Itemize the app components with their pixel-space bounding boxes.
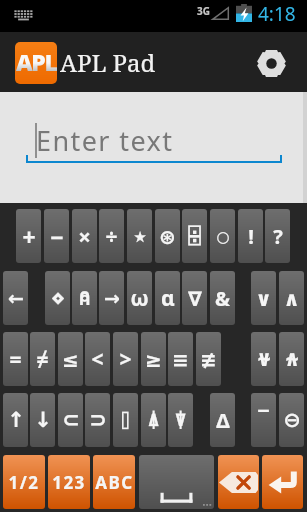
staticText: ↓ xyxy=(34,408,52,432)
staticText: ⌹ xyxy=(188,224,201,248)
staticText: 1/2 xyxy=(8,471,40,494)
button[interactable]: Space xyxy=(139,455,214,509)
button[interactable]: ≤ xyxy=(58,332,83,386)
button[interactable]: ⌷ xyxy=(113,393,138,447)
staticText: ⊂ xyxy=(62,408,80,432)
button[interactable]: ÷ xyxy=(99,209,124,263)
staticText: ← xyxy=(8,287,24,309)
staticText: ⊛ xyxy=(159,225,176,248)
button[interactable]: ⊂ xyxy=(58,393,83,447)
staticText: → xyxy=(104,287,120,309)
staticText: > xyxy=(119,345,132,374)
staticText: ÷ xyxy=(105,222,118,251)
staticText: 123 xyxy=(52,471,86,494)
button[interactable]: ? xyxy=(265,209,290,263)
button[interactable]: ⍒ xyxy=(168,393,193,447)
staticText: < xyxy=(91,345,104,374)
staticText: & xyxy=(215,285,230,312)
button[interactable]: APL xyxy=(15,42,57,84)
staticText: 4:18 xyxy=(258,1,296,27)
button[interactable]: − xyxy=(44,209,69,263)
button[interactable]: ⊖ xyxy=(279,393,304,447)
staticText: ⊃ xyxy=(89,408,107,432)
staticText: + xyxy=(22,221,36,252)
button[interactable]: ⌹ xyxy=(182,209,207,263)
button[interactable]: ¯ xyxy=(251,393,276,447)
staticText: ⍝ xyxy=(78,286,91,310)
button[interactable]: ↑ xyxy=(3,393,28,447)
button[interactable]: & xyxy=(210,271,235,325)
button[interactable]: Backspace xyxy=(218,455,259,509)
staticText: ⋆ xyxy=(132,222,148,251)
button[interactable]: ⍝ xyxy=(72,271,97,325)
button[interactable]: 123 xyxy=(48,455,90,509)
button[interactable]: Enter text xyxy=(26,108,282,162)
staticText: ⍒ xyxy=(175,410,186,430)
button[interactable]: 1/2 xyxy=(3,455,45,509)
button[interactable]: → xyxy=(99,271,124,325)
staticText: ⋄ xyxy=(50,284,66,312)
button[interactable]: ≡ xyxy=(168,332,193,386)
button[interactable]: + xyxy=(16,209,41,263)
staticText: ≡ xyxy=(172,348,189,371)
staticText: ABC xyxy=(95,471,134,494)
button[interactable]: × xyxy=(72,209,97,263)
button[interactable]: ω xyxy=(127,271,152,325)
button[interactable]: Δ xyxy=(210,393,235,447)
button[interactable]: Settings xyxy=(252,44,290,82)
button[interactable]: ∇ xyxy=(182,271,207,325)
button[interactable]: ⊃ xyxy=(85,393,110,447)
button[interactable]: Enter xyxy=(262,455,303,509)
button[interactable]: ⍋ xyxy=(141,393,166,447)
button[interactable]: α xyxy=(155,271,180,325)
button[interactable]: ○ xyxy=(210,209,235,263)
button[interactable]: ← xyxy=(3,271,28,325)
staticText: Enter text xyxy=(36,122,174,159)
staticText: = xyxy=(9,345,22,374)
staticText: ≤ xyxy=(62,348,79,371)
staticText: ≥ xyxy=(145,348,162,371)
staticText: 3G xyxy=(197,4,210,18)
button[interactable]: ⋆ xyxy=(127,209,152,263)
staticText: APL xyxy=(16,46,57,77)
staticText: ≠ xyxy=(36,345,49,374)
button[interactable]: ≠ xyxy=(30,332,55,386)
button[interactable]: ⋄ xyxy=(45,271,70,325)
button[interactable]: > xyxy=(113,332,138,386)
staticText: ⌷ xyxy=(120,410,131,431)
staticText: ⍲ xyxy=(285,346,299,372)
button[interactable]: ∧ xyxy=(279,271,304,325)
staticText: α xyxy=(161,284,175,313)
button[interactable]: < xyxy=(85,332,110,386)
staticText: ↑ xyxy=(7,408,25,432)
staticText: Δ xyxy=(216,407,230,434)
staticText: ∧ xyxy=(283,287,300,310)
button[interactable]: ≥ xyxy=(141,332,166,386)
staticText: ¯ xyxy=(258,406,269,435)
staticText: × xyxy=(78,221,91,251)
staticText: APL Pad xyxy=(60,46,156,79)
button[interactable]: ! xyxy=(238,209,263,263)
staticText: ⍋ xyxy=(148,410,159,430)
button[interactable]: ABC xyxy=(93,455,135,509)
button[interactable]: ⍱ xyxy=(251,332,276,386)
staticText: ⊖ xyxy=(283,408,301,432)
staticText: ⍱ xyxy=(257,346,271,372)
button[interactable]: ⊛ xyxy=(155,209,180,263)
staticText: ∇ xyxy=(188,287,202,310)
staticText: − xyxy=(50,221,64,252)
staticText: ○ xyxy=(216,228,230,245)
staticText: ω xyxy=(130,284,149,313)
staticText: ! xyxy=(248,223,254,250)
staticText: ∨ xyxy=(255,287,272,310)
staticText: ≢ xyxy=(200,348,217,371)
button[interactable]: ⍲ xyxy=(279,332,304,386)
button[interactable]: ≢ xyxy=(196,332,221,386)
staticText: ? xyxy=(273,223,283,250)
button[interactable]: ∨ xyxy=(251,271,276,325)
button[interactable]: = xyxy=(3,332,28,386)
button[interactable]: ↓ xyxy=(30,393,55,447)
